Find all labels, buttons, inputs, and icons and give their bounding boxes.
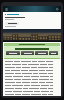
button[interactable]: Action 1: [6, 51, 20, 55]
button[interactable]: Action 4: [49, 51, 58, 55]
button[interactable]: [3, 29, 61, 42]
button[interactable]: Action 3: [35, 51, 48, 55]
button[interactable]: [5, 22, 19, 25]
button[interactable]: Action 2: [21, 51, 34, 55]
button[interactable]: Search: [56, 8, 59, 11]
button[interactable]: Menu: [3, 6, 61, 12]
button[interactable]: Menu: [5, 8, 8, 11]
